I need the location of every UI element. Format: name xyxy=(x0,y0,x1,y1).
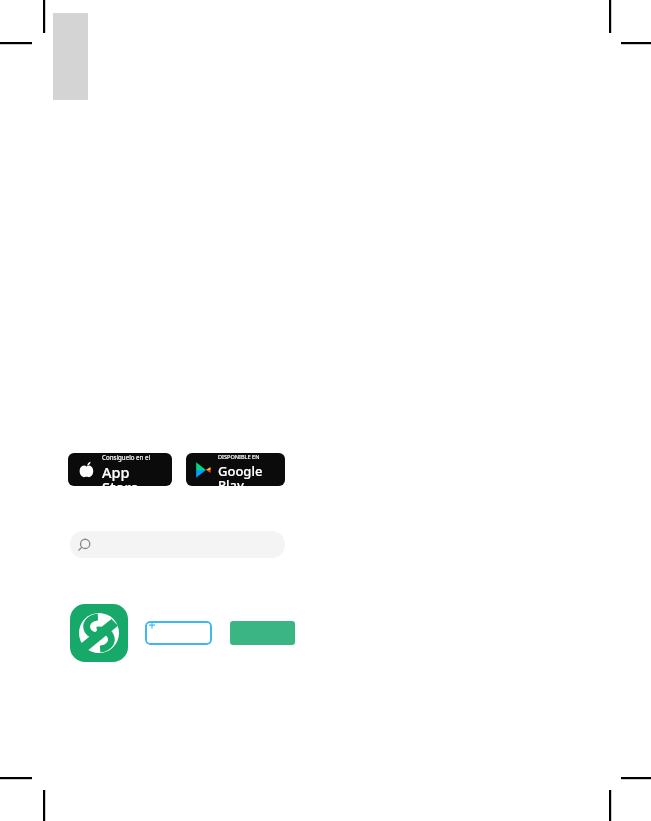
staticText: DISPONIBLE EN xyxy=(218,453,260,461)
button[interactable]: Abrir la aplicación xyxy=(70,604,128,662)
button[interactable]: Enviar xyxy=(230,621,295,645)
button[interactable]: Campo de texto xyxy=(145,621,212,645)
button[interactable]: Consíguelo en el App Store xyxy=(68,453,172,486)
button[interactable]: Buscar xyxy=(70,531,285,558)
staticText: Consíguelo en el xyxy=(102,453,151,461)
staticText: Google Play xyxy=(218,462,279,486)
button[interactable]: Disponible en Google Play xyxy=(186,453,285,486)
staticText: App Store xyxy=(102,462,165,486)
